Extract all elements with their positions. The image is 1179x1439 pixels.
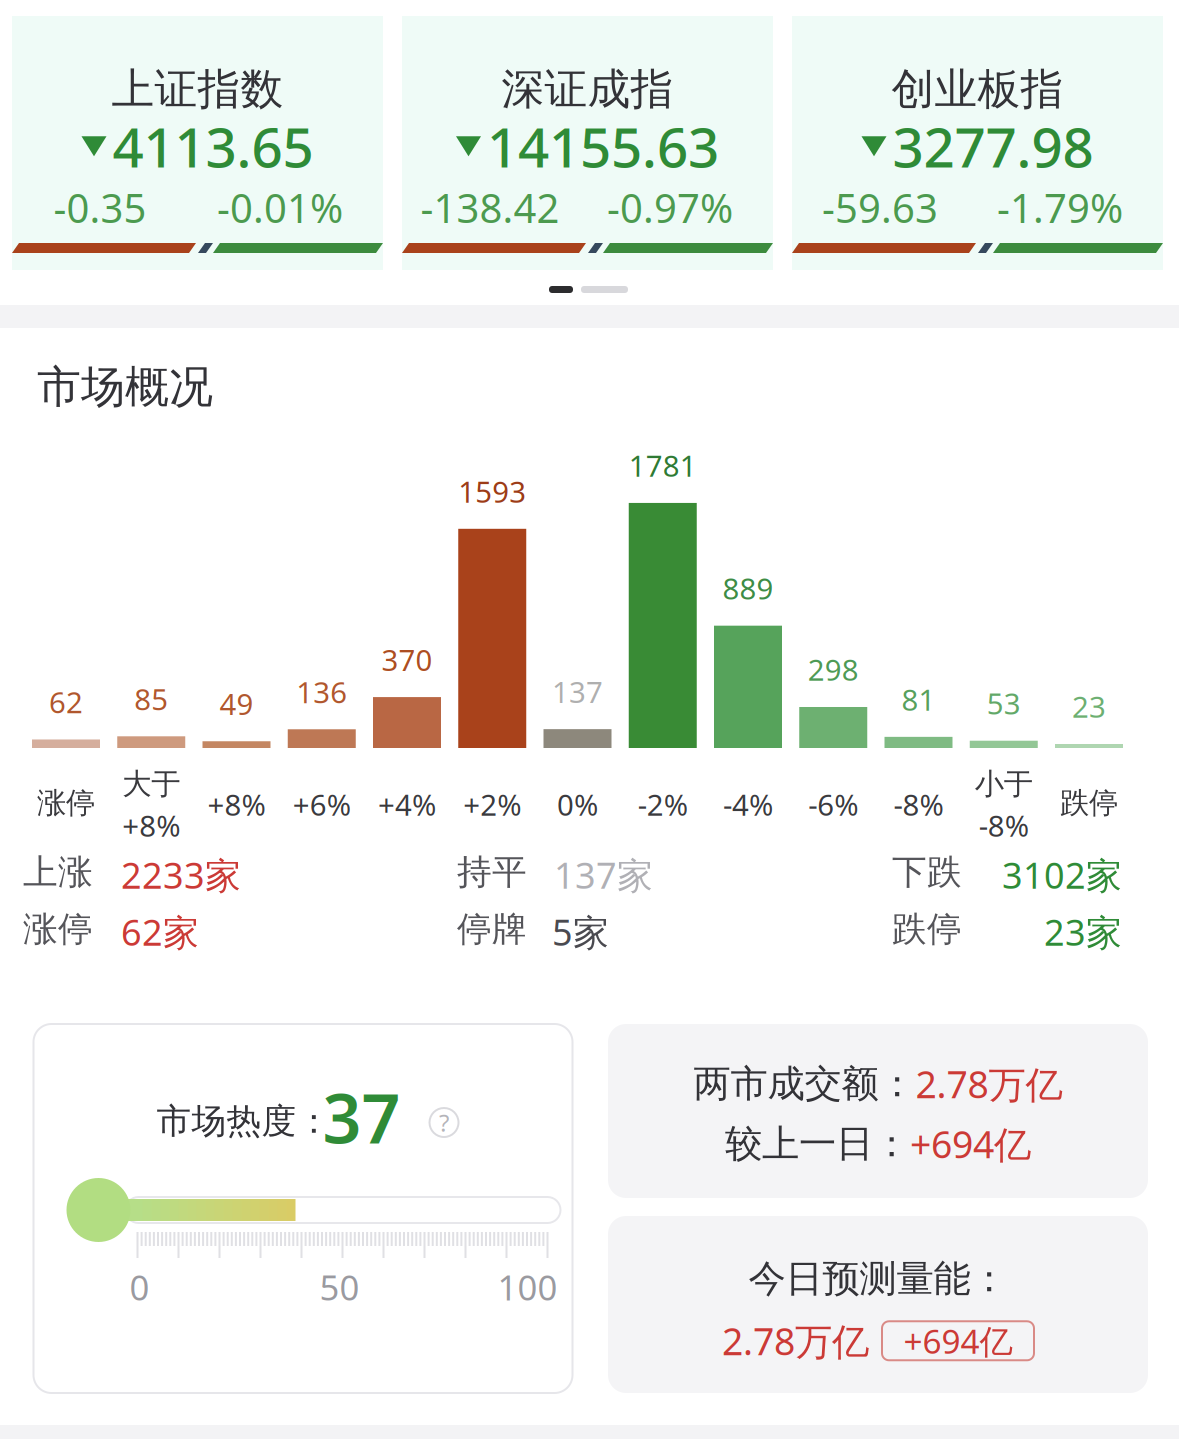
- staticText: +6%: [293, 785, 351, 824]
- staticText: 2.78万亿: [722, 1316, 869, 1366]
- staticText: -0.01%: [217, 181, 343, 234]
- staticText: 2233家: [121, 851, 241, 899]
- staticText: 85: [134, 679, 168, 718]
- staticText: 62: [49, 682, 83, 721]
- staticText: -1.79%: [997, 181, 1123, 234]
- staticText: +4%: [378, 785, 436, 824]
- button[interactable]: 上证指数: [12, 16, 383, 270]
- staticText: 上涨: [23, 851, 93, 894]
- staticText: 62家: [121, 908, 199, 956]
- staticText: ?: [439, 1107, 449, 1138]
- staticText: 136: [296, 672, 347, 711]
- staticText: 137: [552, 672, 603, 711]
- button[interactable]: 创业板指: [792, 16, 1163, 270]
- staticText: +2%: [463, 785, 521, 824]
- staticText: 3102家: [1002, 851, 1122, 899]
- staticText: 下跌: [892, 851, 962, 894]
- staticText: 深证成指: [501, 63, 673, 115]
- staticText: 跌停: [892, 908, 962, 951]
- staticText: 市场概况: [37, 360, 213, 414]
- staticText: 持平: [457, 851, 527, 894]
- staticText: 14155.63: [487, 110, 719, 183]
- staticText: 小于: [975, 766, 1033, 802]
- button[interactable]: 市场热度：: [34, 1024, 573, 1393]
- staticText: 298: [808, 650, 859, 689]
- staticText: 市场热度：: [156, 1100, 331, 1143]
- staticText: 1593: [458, 472, 526, 511]
- button[interactable]: 两市成交额：: [608, 1024, 1148, 1198]
- staticText: +694亿: [903, 1319, 1012, 1363]
- staticText: 5家: [552, 908, 609, 956]
- staticText: 较上一日：: [725, 1121, 910, 1167]
- staticText: 3277.98: [892, 110, 1093, 183]
- staticText: 2.78万亿: [915, 1059, 1062, 1109]
- button[interactable]: 深证成指: [402, 16, 773, 270]
- staticText: 81: [901, 680, 935, 719]
- staticText: -8%: [893, 785, 943, 824]
- staticText: 0%: [557, 785, 598, 824]
- staticText: -6%: [808, 785, 858, 824]
- staticText: 370: [381, 640, 432, 679]
- staticText: -138.42: [420, 181, 559, 234]
- staticText: 889: [722, 569, 773, 608]
- staticText: 137家: [554, 851, 653, 899]
- staticText: 今日预测量能：: [748, 1256, 1007, 1302]
- staticText: 上证指数: [111, 63, 283, 115]
- staticText: 两市成交额：: [693, 1061, 915, 1107]
- staticText: 涨停: [23, 908, 93, 951]
- staticText: 53: [987, 684, 1021, 723]
- staticText: -4%: [723, 785, 773, 824]
- staticText: 50: [319, 1264, 359, 1310]
- staticText: -0.35: [53, 181, 146, 234]
- staticText: 1781: [629, 446, 697, 485]
- button[interactable]: 今日预测量能：: [608, 1216, 1148, 1393]
- staticText: 停牌: [457, 908, 527, 951]
- staticText: -59.63: [822, 181, 938, 234]
- staticText: +694亿: [910, 1119, 1031, 1169]
- staticText: +8%: [207, 785, 265, 824]
- staticText: -2%: [638, 785, 688, 824]
- staticText: -0.97%: [607, 181, 733, 234]
- staticText: 创业板指: [891, 63, 1063, 115]
- staticText: 跌停: [1060, 785, 1118, 821]
- staticText: 23: [1072, 687, 1106, 726]
- staticText: 49: [219, 684, 253, 723]
- staticText: 37: [322, 1072, 400, 1162]
- staticText: 0: [129, 1264, 149, 1310]
- staticText: 23家: [1044, 908, 1122, 956]
- staticText: -8%: [979, 806, 1029, 845]
- staticText: +8%: [122, 806, 180, 845]
- staticText: 大于: [122, 766, 180, 802]
- staticText: 涨停: [37, 785, 95, 821]
- staticText: 100: [497, 1264, 557, 1310]
- staticText: 4113.65: [112, 110, 313, 183]
